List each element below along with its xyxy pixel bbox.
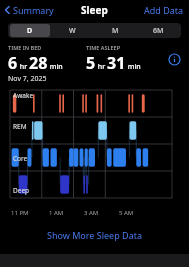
staticText: 5 AM	[119, 209, 134, 217]
button[interactable]: D	[10, 24, 50, 37]
staticText: hr	[96, 62, 107, 72]
staticText: M	[112, 26, 119, 36]
staticText: 3 AM	[84, 209, 99, 217]
button[interactable]: M	[95, 24, 136, 37]
staticText: 1 AM	[49, 209, 64, 217]
staticText: 31	[107, 52, 126, 74]
staticText: hr	[18, 62, 29, 72]
staticText: min	[126, 62, 141, 72]
staticText: Deep	[13, 186, 30, 195]
staticText: min	[48, 62, 63, 72]
staticText: Summary	[13, 4, 54, 16]
button[interactable]: Summary	[0, 1, 60, 19]
button[interactable]: W	[52, 24, 93, 37]
staticText: TIME IN BED	[8, 44, 42, 51]
staticText: W	[69, 26, 76, 36]
staticText: 11 PM	[11, 209, 29, 217]
staticText: TIME ASLEEP	[86, 44, 121, 51]
staticText: Nov 7, 2025	[8, 74, 47, 84]
button[interactable]: Show More Sleep Data	[0, 227, 189, 243]
button[interactable]: 6M	[138, 24, 179, 37]
staticText: 6	[8, 52, 18, 74]
button[interactable]: Add Data	[139, 1, 189, 19]
staticText: Sleep	[81, 3, 108, 17]
button[interactable]: Information	[167, 52, 181, 66]
staticText: Awake	[13, 91, 34, 100]
staticText: D	[27, 26, 33, 36]
staticText: Core	[13, 154, 28, 163]
staticText: 6M	[153, 26, 164, 36]
staticText: 28	[29, 52, 48, 74]
staticText: REM	[13, 122, 27, 131]
staticText: 5	[86, 52, 96, 74]
